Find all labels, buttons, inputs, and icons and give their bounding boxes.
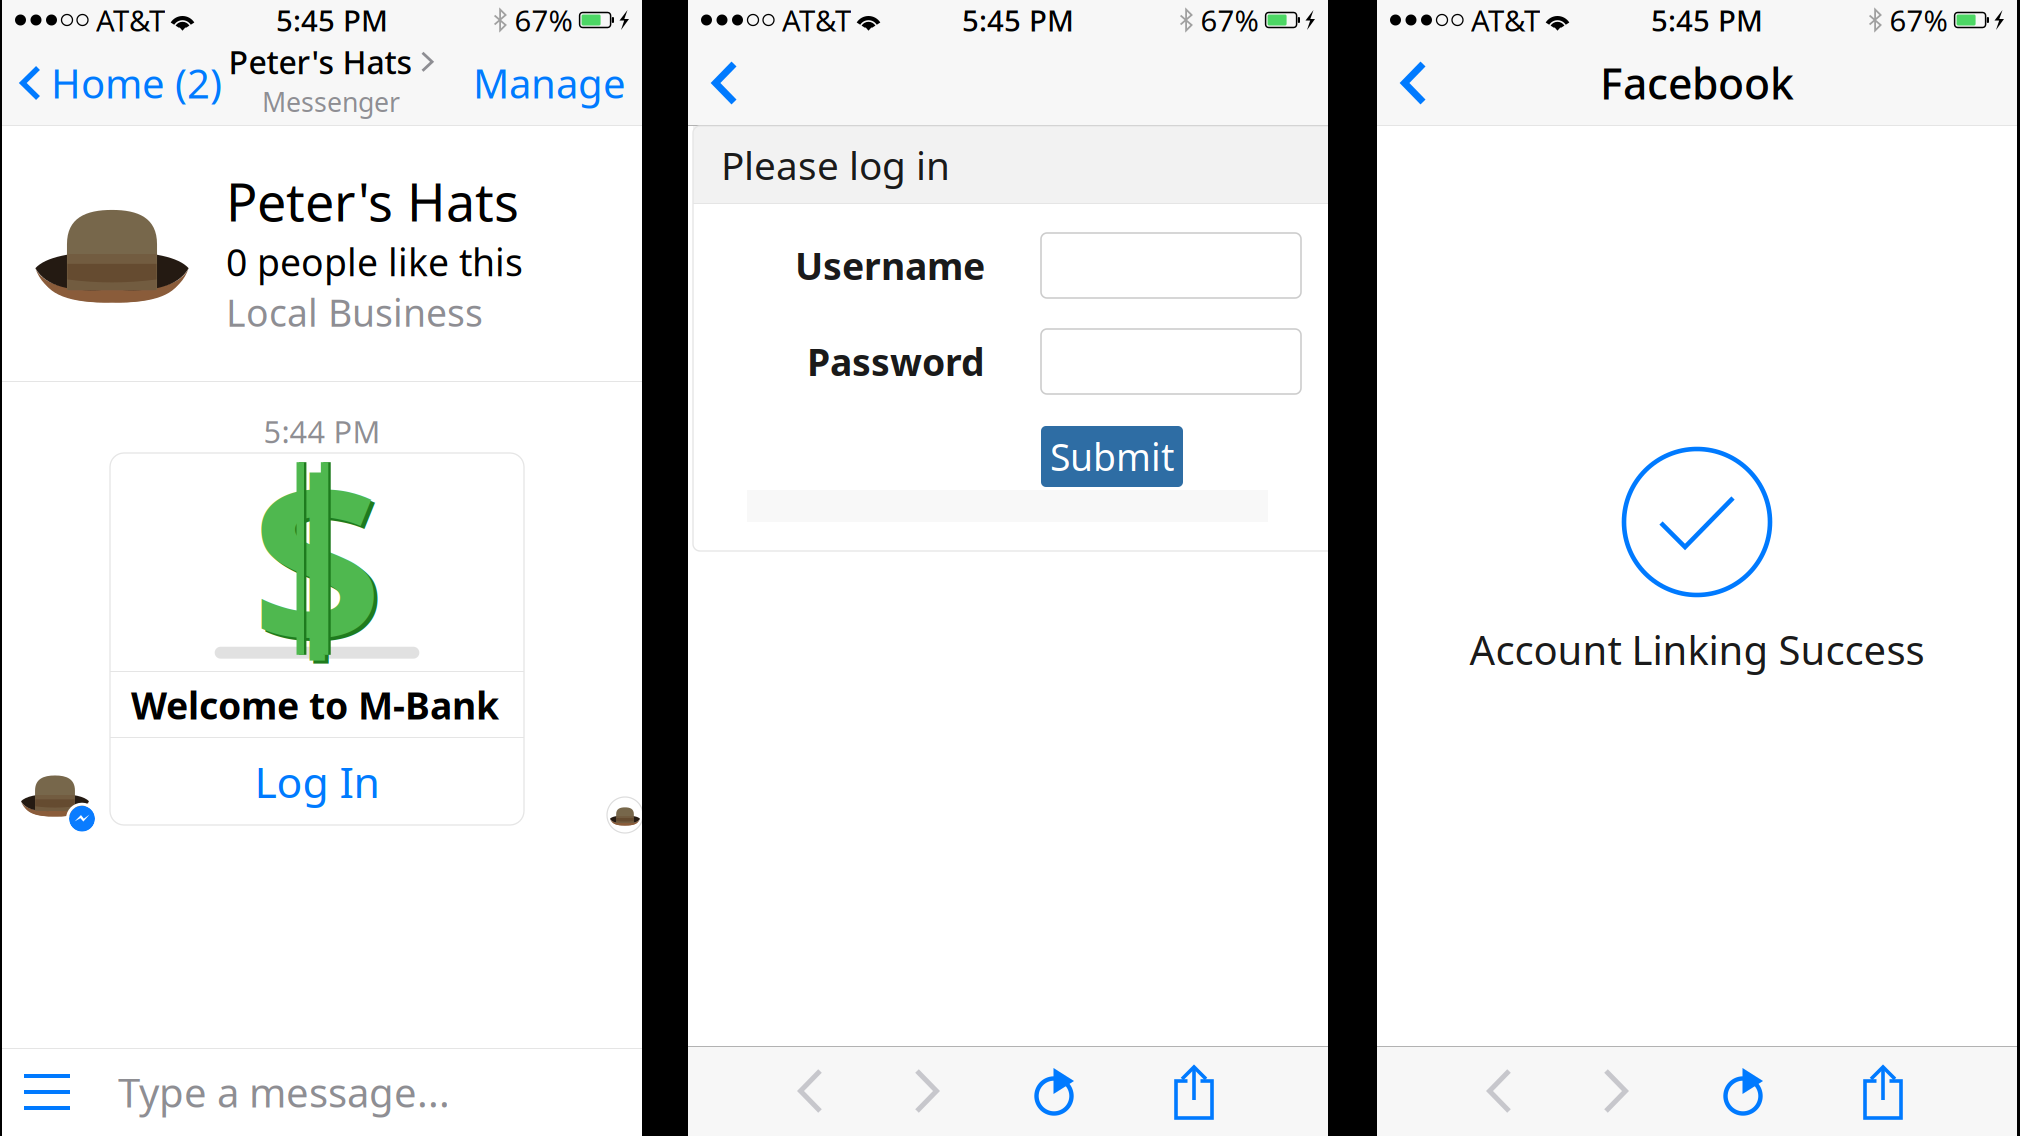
button[interactable]: Reload [1698, 1047, 1794, 1136]
staticText: $ [251, 406, 382, 711]
button[interactable]: Back [1377, 46, 1423, 120]
staticText: Home (2) [51, 56, 222, 109]
staticText: Log In [254, 753, 379, 810]
staticText: $ [255, 409, 386, 714]
button[interactable]: Log In [110, 738, 524, 825]
staticText: Type a message... [118, 1065, 450, 1118]
staticText: 0 people like this [226, 237, 523, 286]
staticText: Submit [1050, 432, 1174, 481]
staticText: 67% [515, 0, 573, 39]
staticText: 5:45 PM [962, 0, 1074, 39]
button[interactable]: Share [1835, 1047, 1931, 1136]
button[interactable]: Manage [2, 40, 642, 126]
staticText: 5:45 PM [1651, 0, 1763, 39]
button[interactable]: Back [1450, 1046, 1546, 1136]
staticText: AT&T [96, 0, 165, 39]
staticText: Peter's Hats [228, 40, 412, 83]
staticText: 5:44 PM [263, 411, 380, 452]
staticText: Welcome to M-Bank [131, 680, 499, 730]
button[interactable]: Back [761, 1046, 857, 1136]
button[interactable]: Submit [1041, 426, 1183, 487]
staticText: Username [795, 241, 985, 290]
button[interactable]: Forward [880, 1046, 976, 1136]
staticText: 67% [1890, 0, 1948, 39]
staticText: Password [807, 337, 985, 386]
staticText: Local Business [226, 287, 483, 337]
button[interactable]: Peter's Hats [2, 40, 642, 126]
staticText: Account Linking Success [1469, 623, 1924, 676]
staticText: AT&T [782, 0, 851, 39]
staticText: Manage [473, 56, 626, 109]
button[interactable]: Back [688, 46, 734, 120]
staticText: 5:45 PM [276, 0, 388, 39]
staticText: Messenger [262, 84, 400, 119]
staticText: Please log in [721, 139, 950, 191]
button[interactable]: Reload [1009, 1047, 1105, 1136]
button[interactable]: Forward [1569, 1046, 1665, 1136]
staticText: AT&T [1471, 0, 1540, 39]
staticText: Facebook [1600, 55, 1794, 111]
staticText: 67% [1201, 0, 1259, 39]
button[interactable]: Menu [2, 1056, 92, 1128]
button[interactable]: Home (2) [2, 40, 222, 126]
staticText: Peter's Hats [226, 167, 519, 236]
button[interactable]: Share [1146, 1047, 1242, 1136]
